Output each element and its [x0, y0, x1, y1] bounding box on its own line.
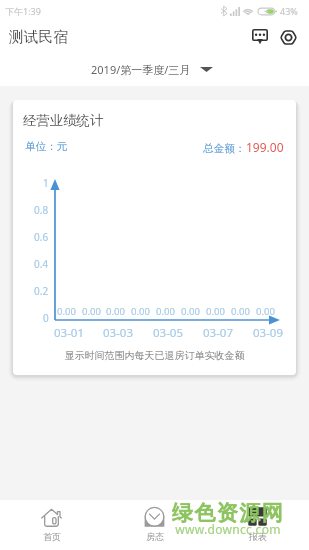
staticText: 0.8 [34, 203, 49, 217]
staticText: 199.00 [246, 139, 284, 155]
staticText: 0.6 [34, 230, 49, 244]
staticText: 绿色资源网 [170, 500, 286, 523]
staticText: 总金额： [203, 142, 246, 155]
button[interactable]: 2019/第一季度/三月 [0, 53, 309, 86]
staticText: 0.4 [34, 257, 49, 271]
staticText: 首页 [43, 531, 61, 542]
staticText: 0.00 [206, 305, 225, 318]
staticText: 1 [43, 176, 49, 190]
staticText: 经营业绩统计 [23, 112, 104, 129]
staticText: 下午1:39 [5, 5, 41, 17]
staticText: www.downcc.com [170, 521, 286, 535]
staticText: 测试民宿 [9, 28, 69, 47]
staticText: 房态 [146, 531, 164, 542]
button[interactable]: 首页 [0, 500, 103, 550]
staticText: 0.00 [256, 305, 275, 318]
staticText: 0.00 [82, 305, 101, 318]
button[interactable]: Messages [245, 22, 274, 51]
button[interactable]: 报表 [206, 500, 309, 550]
staticText: 报表 [249, 531, 267, 542]
staticText: 0 [43, 311, 49, 325]
staticText: 0.00 [156, 305, 175, 318]
staticText: 03-07 [203, 325, 234, 339]
staticText: 03-05 [153, 325, 184, 339]
staticText: 2019/第一季度/三月 [91, 62, 191, 77]
staticText: 0.2 [34, 284, 49, 298]
staticText: 显示时间范围内每天已退房订单实收金额 [13, 349, 296, 362]
button[interactable]: Settings [273, 22, 303, 52]
staticText: 03-03 [103, 325, 134, 339]
button[interactable]: 房态 [103, 500, 206, 550]
staticText: 03-01 [54, 325, 85, 339]
staticText: 0.00 [106, 305, 125, 318]
staticText: 43% [280, 5, 298, 17]
staticText: 0.00 [131, 305, 150, 318]
staticText: 0.00 [181, 305, 200, 318]
staticText: 单位：元 [25, 140, 68, 153]
staticText: 0.00 [231, 305, 250, 318]
staticText: 0.00 [57, 305, 76, 318]
staticText: 03-09 [253, 325, 284, 339]
